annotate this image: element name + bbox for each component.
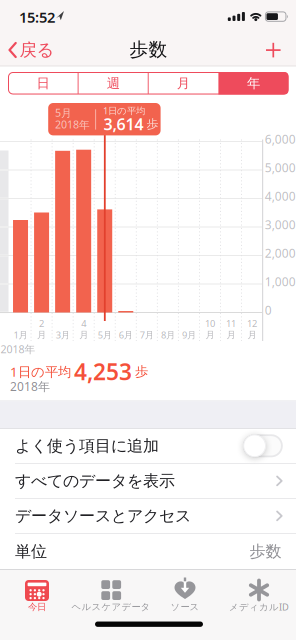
staticText: 1,000	[265, 273, 296, 289]
staticText: 週	[107, 75, 120, 91]
button[interactable]: 年	[218, 72, 288, 94]
button[interactable]: すべてのデータを表示	[0, 463, 296, 498]
staticText: 5,000	[265, 159, 296, 175]
staticText: データソースとアクセス	[15, 506, 191, 526]
staticText: メディカルID	[229, 601, 289, 613]
staticText: 5月	[98, 329, 112, 341]
staticText: 年	[247, 75, 260, 91]
staticText: 7月	[140, 329, 154, 341]
staticText: 2018年	[0, 342, 35, 356]
staticText: 2018年	[10, 378, 50, 394]
button[interactable]: 単位	[0, 533, 296, 569]
button[interactable]: ソース	[148, 570, 222, 626]
staticText: 歩数	[249, 542, 281, 561]
button[interactable]: 今日	[0, 570, 74, 626]
staticText: 3月	[56, 329, 70, 341]
staticText: 戻る	[19, 39, 54, 61]
staticText: 3,614	[103, 113, 143, 135]
staticText: ソース	[170, 601, 199, 613]
staticText: 月	[248, 329, 257, 341]
staticText: 0	[265, 302, 272, 318]
staticText: 15:52	[19, 7, 55, 27]
staticText: 歩数	[129, 38, 167, 61]
staticText: 9月	[182, 329, 196, 341]
staticText: 5月	[55, 106, 72, 120]
staticText: 8月	[161, 329, 175, 341]
staticText: 12	[247, 317, 257, 329]
staticText: すべてのデータを表示	[15, 471, 175, 491]
staticText: 月	[205, 329, 214, 341]
button[interactable]: 戻る	[8, 35, 56, 65]
staticText: 4,000	[265, 188, 296, 204]
staticText: ヘルスケアデータ	[71, 601, 150, 613]
button[interactable]: よく使う項目に追加	[0, 428, 296, 463]
button[interactable]: 週	[78, 72, 148, 94]
staticText: 月	[226, 329, 235, 341]
staticText: 2	[39, 317, 44, 329]
staticText: 今日	[28, 601, 46, 613]
staticText: 月	[177, 75, 190, 91]
staticText: 6,000	[265, 131, 296, 147]
button[interactable]: 月	[148, 72, 218, 94]
button[interactable]: データソースとアクセス	[0, 498, 296, 533]
staticText: 10	[205, 317, 215, 329]
staticText: 2,000	[265, 245, 296, 261]
button[interactable]: メディカルID	[222, 570, 296, 626]
button[interactable]: 日	[8, 72, 78, 94]
staticText: 歩	[146, 117, 158, 131]
staticText: 1日の平均	[103, 104, 145, 117]
staticText: 1日の平均	[10, 363, 71, 380]
staticText: よく使う項目に追加	[15, 436, 159, 456]
button[interactable]	[258, 35, 288, 65]
staticText: 2018年	[55, 117, 90, 131]
staticText: 6月	[119, 329, 133, 341]
staticText: 11	[226, 317, 236, 329]
staticText: 4	[81, 317, 86, 329]
staticText: 1月	[13, 329, 27, 341]
staticText: 3,000	[265, 216, 296, 232]
staticText: 単位	[15, 542, 47, 561]
staticText: 歩	[135, 363, 148, 380]
staticText: 月	[37, 329, 46, 341]
button[interactable]: ヘルスケアデータ	[74, 570, 148, 626]
staticText: 月	[79, 329, 88, 341]
staticText: 4,253	[74, 356, 132, 386]
staticText: 日	[37, 75, 50, 91]
